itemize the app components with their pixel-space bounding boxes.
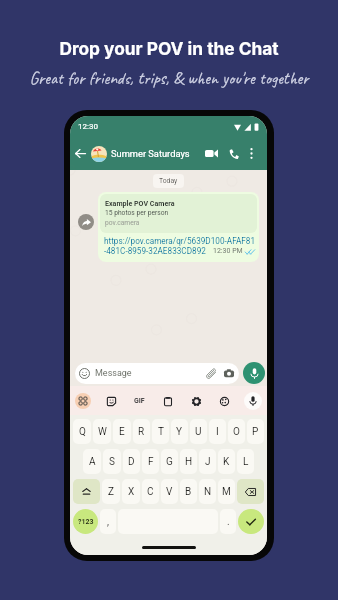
button[interactable]: F xyxy=(142,449,159,474)
button[interactable]: Stickers xyxy=(103,393,119,409)
button[interactable]: . xyxy=(220,509,236,534)
button[interactable]: O xyxy=(228,419,245,444)
staticText: A xyxy=(89,456,96,468)
staticText: C xyxy=(147,486,154,498)
staticText: -481C-8959-32AE833CD892 xyxy=(104,246,206,256)
button[interactable]: Q xyxy=(73,419,91,444)
staticText: E xyxy=(119,426,125,438)
button[interactable]: Settings xyxy=(188,393,204,409)
staticText: R xyxy=(138,426,145,438)
staticText: H xyxy=(185,456,193,468)
staticText: Drop your POV in the Chat xyxy=(59,38,279,59)
button[interactable]: W xyxy=(93,419,111,444)
button[interactable]: Video call xyxy=(202,144,221,163)
staticText: P xyxy=(252,426,259,438)
staticText: ?123 xyxy=(78,518,94,526)
staticText: I xyxy=(216,426,219,438)
button[interactable]: Themes xyxy=(216,393,232,409)
staticText: X xyxy=(128,486,135,498)
button[interactable]: Back xyxy=(71,144,90,163)
staticText: M xyxy=(222,486,231,498)
staticText: G xyxy=(166,456,173,468)
button[interactable]: Voice input xyxy=(244,392,262,410)
staticText: U xyxy=(195,426,202,438)
staticText: Z xyxy=(108,486,114,498)
staticText: V xyxy=(166,486,173,498)
button[interactable]: Shift xyxy=(73,479,100,504)
staticText: . xyxy=(227,516,230,528)
button[interactable]: C xyxy=(142,479,159,504)
staticText: S xyxy=(109,456,115,468)
button[interactable]: GIF xyxy=(131,393,147,409)
staticText: L xyxy=(243,456,249,468)
staticText: Y xyxy=(176,426,183,438)
staticText: 12:30 PM xyxy=(213,247,243,255)
staticText: J xyxy=(205,456,211,468)
button[interactable]: , xyxy=(100,509,116,534)
staticText: 15 photos per person xyxy=(105,209,169,217)
staticText: B xyxy=(185,486,192,498)
staticText: , xyxy=(107,516,109,528)
button[interactable]: Forward xyxy=(78,214,94,230)
staticText: K xyxy=(223,456,230,468)
button[interactable]: Clipboard xyxy=(160,393,176,409)
staticText: F xyxy=(148,456,154,468)
staticText: N xyxy=(204,486,212,498)
button[interactable]: E xyxy=(113,419,131,444)
button[interactable]: L xyxy=(237,449,254,474)
staticText: Great for friends, trips, & when you're … xyxy=(29,67,309,89)
staticText: 12:30 xyxy=(78,122,98,131)
staticText: O xyxy=(233,426,240,438)
button[interactable]: H xyxy=(180,449,197,474)
button[interactable]: More options xyxy=(244,146,259,161)
button[interactable]: Voice message xyxy=(243,362,265,384)
button[interactable]: M xyxy=(218,479,235,504)
button[interactable]: S xyxy=(103,449,121,474)
button[interactable]: J xyxy=(199,449,216,474)
button[interactable]: A xyxy=(83,449,101,474)
button[interactable]: Message xyxy=(75,363,239,384)
button[interactable]: B xyxy=(180,479,197,504)
button[interactable]: N xyxy=(199,479,216,504)
button[interactable]: T xyxy=(152,419,169,444)
button[interactable]: R xyxy=(133,419,150,444)
button[interactable]: V xyxy=(161,479,178,504)
staticText: Summer Saturdays xyxy=(111,148,190,159)
staticText: Example POV Camera xyxy=(105,199,175,207)
button[interactable]: U xyxy=(190,419,207,444)
staticText: T xyxy=(158,426,164,438)
staticText: https://pov.camera/qr/5639D100-AFAF81 xyxy=(104,236,255,246)
button[interactable]: G xyxy=(161,449,178,474)
button[interactable]: I xyxy=(209,419,226,444)
staticText: Q xyxy=(79,426,86,438)
button[interactable]: Backspace xyxy=(237,479,264,504)
button[interactable]: D xyxy=(123,449,140,474)
staticText: Today xyxy=(159,177,178,185)
button[interactable]: Enter xyxy=(238,509,264,534)
staticText: GIF xyxy=(134,397,145,405)
button[interactable]: X xyxy=(122,479,140,504)
button[interactable]: Call xyxy=(225,145,242,162)
button[interactable]: Y xyxy=(171,419,188,444)
button[interactable]: Emoji keyboard xyxy=(75,393,91,409)
button[interactable]: P xyxy=(247,419,264,444)
staticText: pov.camera xyxy=(105,219,140,227)
staticText: W xyxy=(98,426,107,438)
staticText: Message xyxy=(95,368,132,379)
staticText: D xyxy=(128,456,135,468)
button[interactable]: K xyxy=(218,449,235,474)
button[interactable]: Z xyxy=(102,479,120,504)
button[interactable]: ?123 xyxy=(73,509,98,534)
